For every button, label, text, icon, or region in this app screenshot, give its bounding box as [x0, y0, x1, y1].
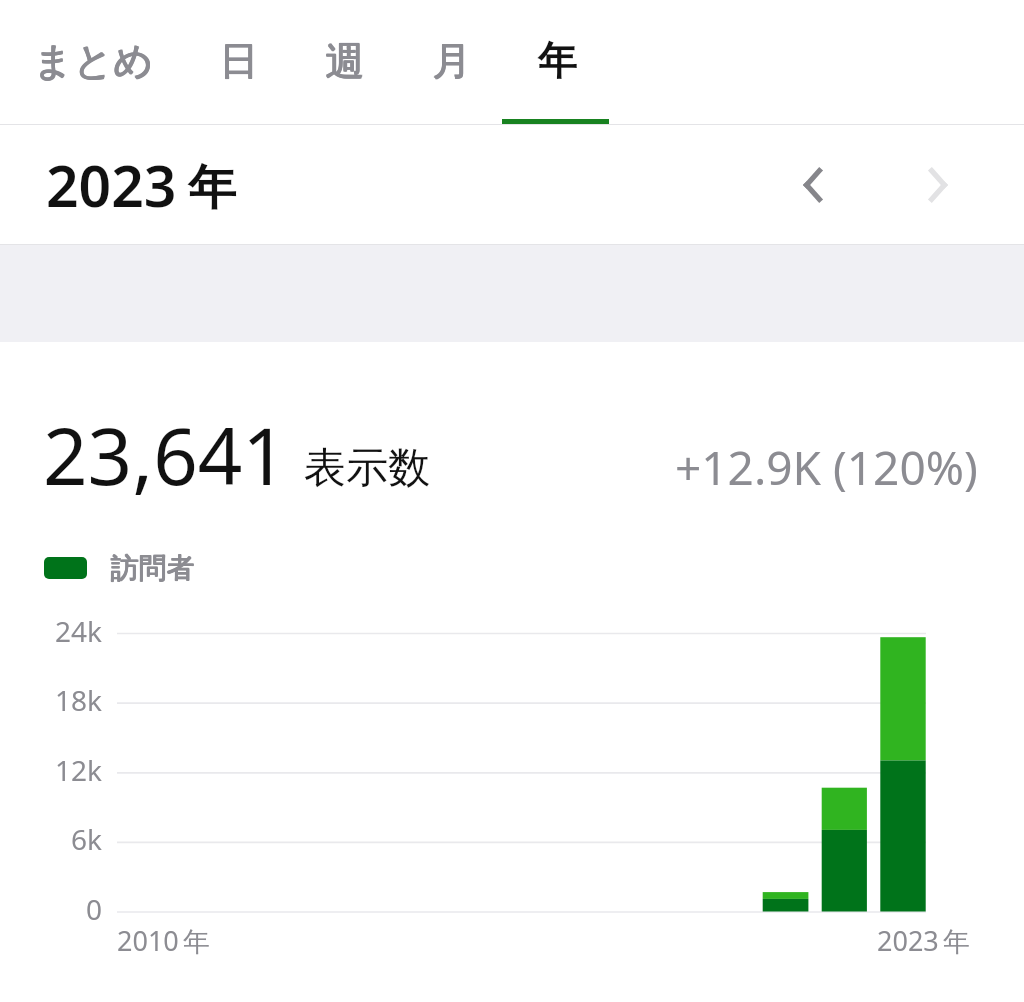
staticText: 週: [326, 37, 365, 86]
staticText: +12.9K (120%): [675, 436, 978, 499]
staticText: 年: [943, 925, 970, 959]
staticText: 日: [219, 36, 258, 85]
staticText: 24k: [55, 612, 102, 650]
button[interactable]: まとめ: [0, 0, 185, 121]
staticText: 訪問者: [111, 551, 195, 586]
staticText: 週: [326, 36, 365, 85]
staticText: 2010: [117, 922, 179, 959]
staticText: 週: [325, 37, 364, 86]
staticText: 訪問者: [110, 551, 194, 586]
staticText: 表示数: [304, 442, 430, 495]
staticText: 訪問者: [111, 550, 195, 585]
staticText: 2023: [877, 922, 939, 959]
staticText: 月: [432, 36, 471, 85]
button[interactable]: 年: [504, 0, 611, 121]
staticText: 週: [325, 36, 364, 85]
staticText: まとめ: [33, 36, 153, 85]
staticText: 12k: [55, 751, 102, 789]
staticText: まとめ: [33, 37, 153, 86]
staticText: 23,641: [43, 402, 287, 508]
button[interactable]: 月: [398, 0, 504, 121]
staticText: 日: [220, 36, 259, 85]
staticText: 年: [538, 36, 577, 85]
staticText: まとめ: [34, 36, 154, 85]
staticText: 18k: [55, 681, 102, 719]
staticText: 訪問者: [110, 550, 194, 585]
staticText: 月: [432, 37, 471, 86]
staticText: 日: [219, 37, 258, 86]
staticText: 0: [85, 890, 102, 928]
staticText: 6k: [71, 820, 102, 858]
staticText: 日: [220, 37, 259, 86]
button[interactable]: 週: [291, 0, 398, 121]
other: 年別の訪問者グラフ: [0, 0, 1024, 1002]
staticText: 月: [433, 37, 472, 86]
staticText: 2023: [46, 146, 177, 224]
staticText: 年: [188, 158, 236, 218]
staticText: まとめ: [34, 37, 154, 86]
staticText: 月: [433, 36, 472, 85]
button[interactable]: 次の期間: [898, 145, 978, 225]
button[interactable]: 前の期間: [773, 145, 853, 225]
button[interactable]: 日: [185, 0, 291, 121]
button[interactable]: 訪問者: [44, 550, 194, 585]
staticText: 年: [183, 925, 210, 959]
